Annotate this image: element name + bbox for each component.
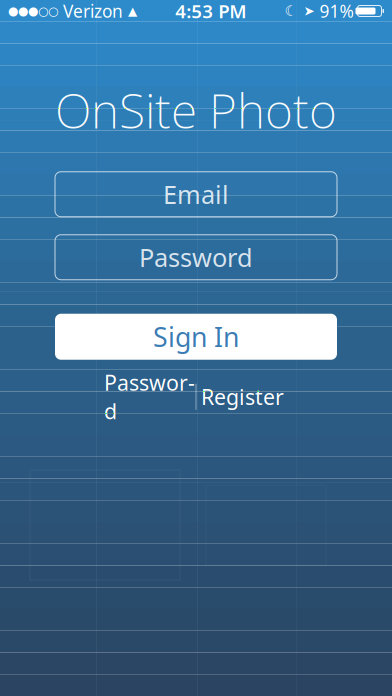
staticText: ☾ — [284, 3, 297, 19]
staticText: Sign In — [153, 319, 239, 354]
staticText: 91% — [319, 0, 353, 22]
staticText: 4:53 PM — [175, 0, 246, 23]
staticText: Verizon — [63, 0, 123, 22]
button[interactable]: Password — [55, 235, 337, 280]
staticText: Register — [201, 383, 284, 411]
button[interactable]: Password — [103, 382, 195, 412]
staticText: Password — [139, 240, 253, 274]
staticText: OnSite Photo — [55, 78, 337, 142]
button[interactable]: Register — [196, 382, 288, 412]
staticText: ●●●○○ — [8, 4, 58, 18]
staticText: ➤ — [303, 3, 314, 18]
staticText: ▲ — [128, 4, 137, 18]
staticText: Password — [104, 368, 195, 425]
button[interactable]: Email — [55, 172, 337, 217]
button[interactable]: Sign In — [55, 314, 337, 360]
staticText: Email — [163, 177, 229, 211]
